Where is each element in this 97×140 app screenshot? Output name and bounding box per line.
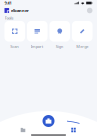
staticText: Merge [76,44,88,49]
staticText: 9:41 [4,0,11,6]
button[interactable]: Scan [4,21,25,49]
button[interactable]: Merge [72,21,92,49]
staticText: Import [31,44,44,49]
button[interactable]: Documents [11,124,35,136]
staticText: Scan [10,44,19,49]
button[interactable]: Import [27,21,47,49]
button[interactable]: Scan document [41,113,56,128]
button[interactable]: Profile [87,8,92,13]
button[interactable]: Tools [61,124,85,136]
staticText: Tools [4,15,13,21]
staticText: eScanner [11,8,29,13]
button[interactable]: Sign [49,21,70,49]
staticText: Sign [56,44,64,49]
